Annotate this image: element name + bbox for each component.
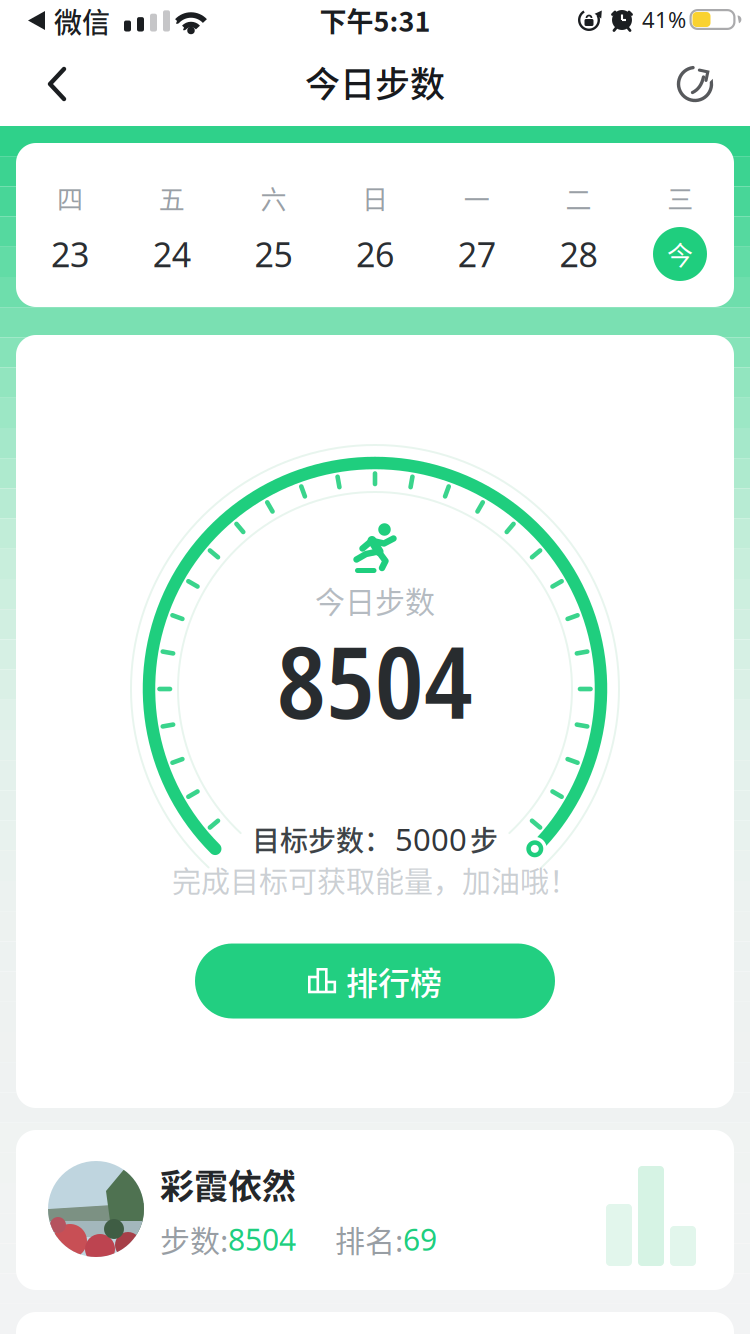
staticText: 23 bbox=[51, 231, 89, 277]
staticText: 41% bbox=[642, 4, 686, 34]
staticText: 排名: bbox=[335, 1217, 403, 1261]
staticText: 步 bbox=[470, 819, 498, 859]
button[interactable]: 25 bbox=[0, 0, 750, 1334]
staticText: 五 bbox=[159, 179, 185, 217]
button[interactable]: 28 bbox=[0, 0, 750, 1334]
staticText: 8504 bbox=[277, 612, 473, 748]
button[interactable]: 今 bbox=[0, 0, 750, 1334]
staticText: 28 bbox=[559, 231, 597, 277]
staticText: 26 bbox=[356, 231, 394, 277]
button[interactable]: 彩霞依然 步数8504 排名69 bbox=[0, 0, 750, 1334]
staticText: 日 bbox=[362, 179, 388, 217]
button[interactable]: 23 bbox=[0, 0, 750, 1334]
staticText: 24 bbox=[153, 231, 191, 277]
button[interactable]: 排行榜 bbox=[0, 0, 750, 1334]
staticText: 完成目标可获取能量，加油哦！ bbox=[172, 859, 578, 901]
staticText: 今日步数 bbox=[315, 578, 435, 622]
staticText: 排行榜 bbox=[346, 958, 442, 1004]
button[interactable]: 24 bbox=[0, 0, 750, 1334]
staticText: 69 bbox=[403, 1219, 437, 1259]
staticText: 27 bbox=[458, 231, 496, 277]
staticText: 5000 bbox=[395, 818, 467, 860]
staticText: 今日步数 bbox=[305, 57, 445, 107]
staticText: 下午5:31 bbox=[319, 0, 430, 40]
staticText: 微信 bbox=[54, 1, 110, 41]
staticText: 二 bbox=[565, 179, 591, 217]
staticText: 目标步数： bbox=[252, 819, 392, 859]
button[interactable]: 27 bbox=[0, 0, 750, 1334]
staticText: 今 bbox=[667, 235, 693, 273]
staticText: 四 bbox=[57, 179, 83, 217]
button[interactable]: 返回 bbox=[0, 0, 750, 1334]
staticText: 一 bbox=[464, 179, 490, 217]
staticText: 步数: bbox=[160, 1217, 228, 1261]
staticText: 8504 bbox=[228, 1219, 296, 1259]
button[interactable]: 刷新 bbox=[0, 0, 750, 1334]
staticText: 三 bbox=[667, 179, 693, 217]
staticText: 25 bbox=[254, 231, 292, 277]
button[interactable]: 26 bbox=[0, 0, 750, 1334]
staticText: 彩霞依然 bbox=[160, 1159, 296, 1209]
staticText: 六 bbox=[260, 179, 286, 217]
